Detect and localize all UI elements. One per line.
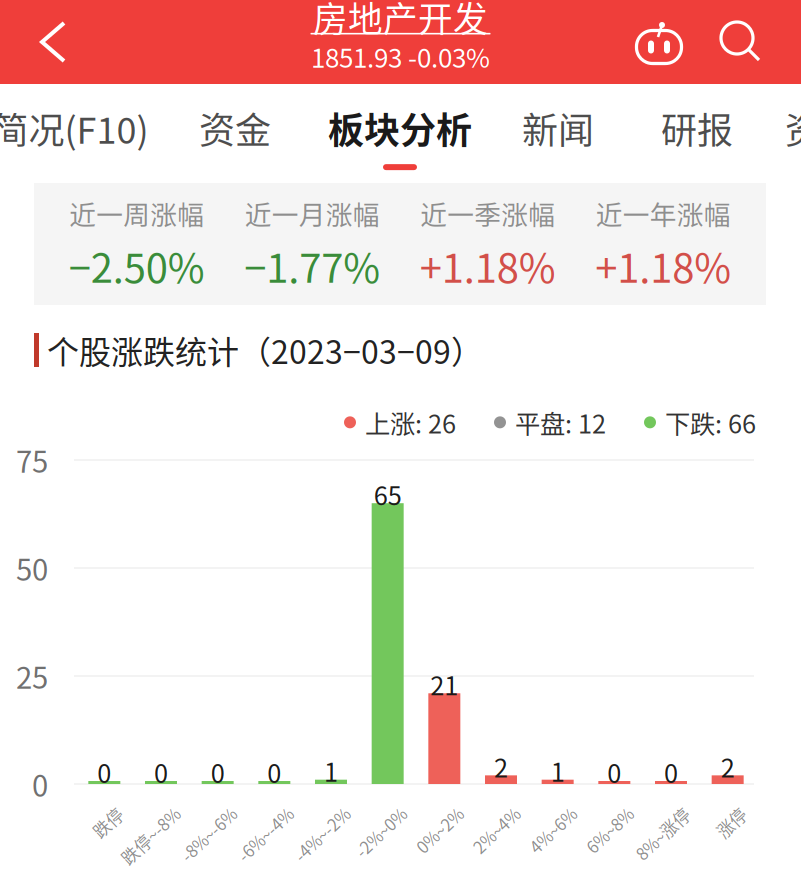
staticText: +1.18%: [420, 236, 556, 294]
staticText: 0%~2%: [395, 802, 452, 826]
staticText: +1.18%: [595, 236, 731, 294]
staticText: 21: [430, 666, 458, 703]
staticText: 房地产开发: [313, 0, 488, 42]
button[interactable]: AI assistant: [617, 0, 701, 84]
staticText: 0: [267, 754, 281, 790]
staticText: 个股涨跌统计（2023−03−09）: [47, 327, 483, 373]
staticText: 75: [16, 439, 48, 481]
staticText: 0: [664, 754, 678, 790]
staticText: 0: [607, 754, 621, 790]
staticText: −1.77%: [244, 236, 380, 294]
button[interactable]: 研报: [628, 84, 766, 183]
staticText: 平盘: 12: [515, 404, 606, 441]
staticText: 近一月涨幅: [245, 194, 380, 232]
button[interactable]: 板块分析: [312, 84, 488, 183]
staticText: -4%~-2%: [270, 802, 339, 826]
staticText: 65: [374, 476, 402, 513]
staticText: 简况(F10): [0, 102, 148, 154]
staticText: 6%~8%: [565, 802, 622, 826]
staticText: −2.50%: [69, 236, 205, 294]
staticText: 50: [16, 547, 48, 589]
staticText: 0: [154, 754, 168, 790]
staticText: 4%~6%: [509, 802, 566, 826]
staticText: 8%~涨停: [612, 802, 679, 826]
button[interactable]: 简况(F10): [0, 84, 158, 183]
staticText: 1: [551, 752, 565, 789]
staticText: 2: [721, 748, 735, 785]
staticText: 板块分析: [328, 102, 472, 154]
button[interactable]: 新闻: [488, 84, 628, 183]
staticText: 涨停: [702, 802, 736, 826]
button[interactable]: Back: [0, 0, 106, 84]
button[interactable]: 资金: [158, 84, 312, 183]
button[interactable]: Search: [701, 0, 781, 84]
staticText: -6%~-4%: [213, 802, 282, 826]
staticText: 资金: [199, 102, 271, 154]
staticText: 0: [211, 754, 225, 790]
staticText: 2: [494, 748, 508, 785]
staticText: 0: [32, 763, 48, 805]
staticText: 跌停: [78, 802, 112, 826]
staticText: 近一周涨幅: [69, 194, 204, 232]
staticText: 下跌: 66: [665, 404, 756, 441]
staticText: 近一季涨幅: [420, 194, 555, 232]
staticText: 研报: [661, 102, 733, 154]
staticText: 1851.93 -0.03%: [311, 37, 490, 75]
staticText: 新闻: [522, 102, 594, 154]
staticText: 0: [97, 754, 111, 790]
staticText: 跌停~-8%: [96, 802, 169, 826]
staticText: 1: [324, 752, 338, 789]
staticText: 资讯: [785, 102, 801, 154]
staticText: -2%~0%: [333, 802, 396, 826]
staticText: 2%~4%: [452, 802, 509, 826]
staticText: 25: [16, 655, 48, 697]
button[interactable]: 资讯: [766, 84, 801, 183]
staticText: -8%~-6%: [157, 802, 226, 826]
staticText: 上涨: 26: [365, 404, 456, 441]
staticText: 近一年涨幅: [596, 194, 731, 232]
